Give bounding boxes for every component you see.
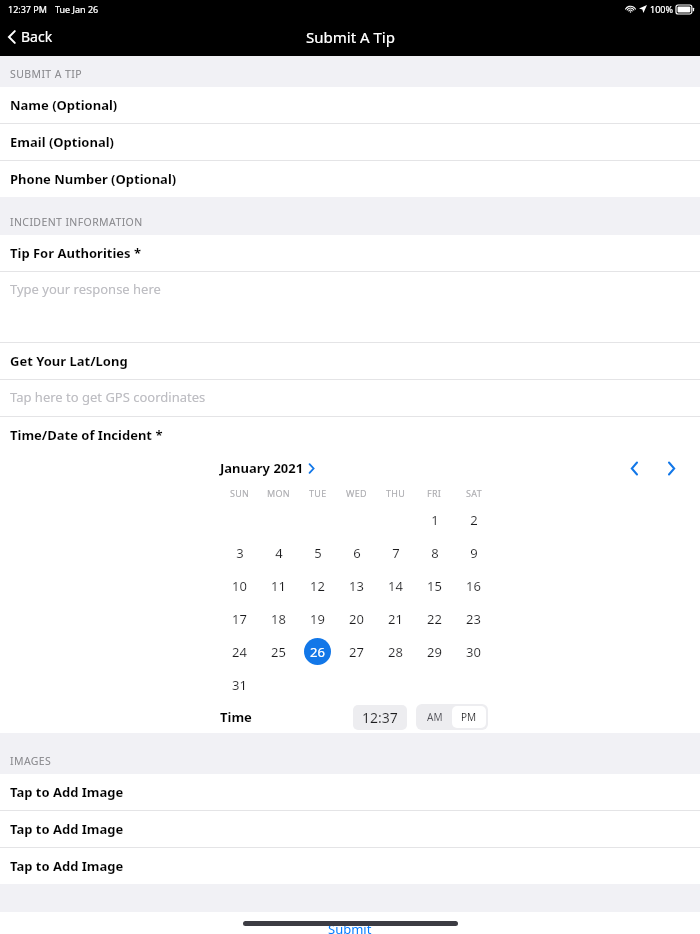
staticText: Submit A Tip	[306, 27, 395, 47]
staticText: 23	[466, 610, 481, 628]
staticText: 20	[349, 610, 364, 628]
staticText: 4	[275, 544, 283, 562]
button[interactable]: 18	[265, 605, 292, 632]
button[interactable]: January 2021	[220, 459, 315, 477]
button[interactable]: 21	[382, 605, 409, 632]
button[interactable]: Name (Optional)	[0, 87, 700, 124]
staticText: Get Your Lat/Long	[10, 352, 128, 370]
staticText: 28	[388, 643, 403, 661]
button[interactable]: 16	[460, 572, 487, 599]
staticText: Tip For Authorities *	[10, 244, 142, 262]
staticText: Name (Optional)	[10, 96, 118, 114]
staticText: Tap to Add Image	[10, 857, 124, 875]
button[interactable]: Tap to Add Image	[0, 811, 700, 848]
button[interactable]: AM	[418, 706, 452, 728]
button[interactable]: 23	[460, 605, 487, 632]
staticText: 9	[470, 544, 478, 562]
button[interactable]: 7	[382, 539, 409, 566]
staticText: Type your response here	[10, 280, 161, 298]
button[interactable]: Email (Optional)	[0, 124, 700, 161]
button[interactable]: 25	[265, 638, 292, 665]
staticText: 15	[427, 577, 442, 595]
button[interactable]: 31	[226, 671, 253, 698]
button[interactable]: 30	[460, 638, 487, 665]
staticText: IMAGES	[10, 754, 52, 768]
button[interactable]: 20	[343, 605, 370, 632]
button[interactable]: 1	[421, 506, 448, 533]
staticText: 19	[310, 610, 325, 628]
button[interactable]: Next month	[661, 455, 682, 482]
button[interactable]: 24	[226, 638, 253, 665]
staticText: 7	[392, 544, 400, 562]
button[interactable]: 26	[304, 638, 331, 665]
staticText: 11	[271, 577, 286, 595]
button[interactable]: Get Your Lat/Long	[0, 343, 700, 380]
button[interactable]: 14	[382, 572, 409, 599]
staticText: 29	[427, 643, 442, 661]
button[interactable]: Phone Number (Optional)	[0, 161, 700, 197]
staticText: 27	[349, 643, 364, 661]
staticText: PM	[461, 710, 477, 724]
staticText: WED	[346, 487, 367, 499]
staticText: Tap here to get GPS coordinates	[10, 388, 206, 406]
button[interactable]: 10	[226, 572, 253, 599]
button[interactable]: Tip For Authorities *	[0, 235, 700, 272]
staticText: FRI	[427, 487, 442, 499]
button[interactable]: 19	[304, 605, 331, 632]
button[interactable]: Tap to Add Image	[0, 848, 700, 884]
button[interactable]: Tap here to get GPS coordinates	[0, 380, 700, 417]
staticText: MON	[267, 487, 290, 499]
staticText: 30	[466, 643, 481, 661]
staticText: 12:37 PM	[8, 3, 47, 15]
button[interactable]: 22	[421, 605, 448, 632]
button[interactable]: 12:37	[353, 705, 407, 730]
staticText: SUBMIT A TIP	[10, 67, 82, 81]
staticText: 2	[470, 511, 478, 529]
staticText: 8	[431, 544, 439, 562]
staticText: 12:37	[362, 708, 398, 727]
button[interactable]: 27	[343, 638, 370, 665]
staticText: THU	[386, 487, 406, 499]
button[interactable]: 28	[382, 638, 409, 665]
staticText: SAT	[466, 487, 482, 499]
staticText: 22	[427, 610, 442, 628]
staticText: Email (Optional)	[10, 133, 114, 151]
button[interactable]: PM	[452, 706, 486, 728]
button[interactable]: 6	[343, 539, 370, 566]
button[interactable]: 8	[421, 539, 448, 566]
button[interactable]: 15	[421, 572, 448, 599]
button[interactable]: Tap to Add Image	[0, 774, 700, 811]
staticText: 14	[388, 577, 403, 595]
button[interactable]: Type your response here	[0, 272, 700, 343]
button[interactable]: 5	[304, 539, 331, 566]
staticText: 24	[232, 643, 247, 661]
staticText: AM	[427, 710, 443, 724]
staticText: 13	[349, 577, 364, 595]
staticText: Tap to Add Image	[10, 820, 124, 838]
staticText: Time/Date of Incident *	[10, 426, 163, 444]
staticText: Phone Number (Optional)	[10, 170, 177, 188]
button[interactable]: 17	[226, 605, 253, 632]
staticText: 6	[353, 544, 361, 562]
button[interactable]: 4	[265, 539, 292, 566]
button[interactable]: Time/Date of Incident *	[0, 417, 700, 453]
staticText: SUN	[230, 487, 250, 499]
staticText: Back	[21, 27, 53, 46]
staticText: Time	[220, 708, 252, 726]
staticText: 25	[271, 643, 286, 661]
staticText: 18	[271, 610, 286, 628]
button[interactable]: 11	[265, 572, 292, 599]
staticText: 3	[236, 544, 244, 562]
button[interactable]: 13	[343, 572, 370, 599]
button[interactable]: 9	[460, 539, 487, 566]
button[interactable]: 29	[421, 638, 448, 665]
staticText: 26	[310, 643, 325, 661]
button[interactable]: 3	[226, 539, 253, 566]
staticText: January 2021	[220, 459, 304, 477]
button[interactable]: Submit	[328, 920, 372, 934]
button[interactable]: Previous month	[624, 455, 645, 482]
button[interactable]: Back	[0, 21, 63, 52]
button[interactable]: 12	[304, 572, 331, 599]
staticText: 16	[466, 577, 481, 595]
button[interactable]: 2	[460, 506, 487, 533]
